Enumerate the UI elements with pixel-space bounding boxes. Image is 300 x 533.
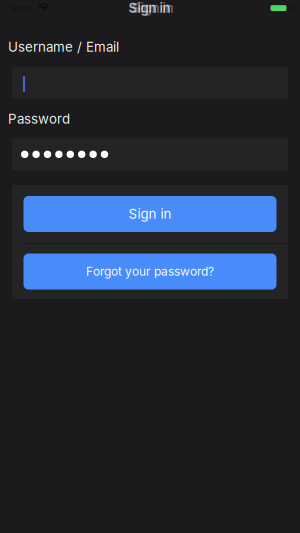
staticText: Sign in xyxy=(128,0,170,16)
staticText: Forgot your password? xyxy=(86,264,214,279)
button[interactable]: Username / Email xyxy=(12,67,288,98)
staticText: Username / Email xyxy=(8,39,119,55)
staticText: Password xyxy=(8,111,70,127)
staticText: Sign in xyxy=(131,0,173,16)
button[interactable]: Forgot your password? xyxy=(23,253,276,289)
staticText: Sign in xyxy=(128,206,171,222)
button[interactable]: Password xyxy=(12,139,288,170)
button[interactable]: Sign in xyxy=(23,196,276,232)
staticText: Carrier xyxy=(6,3,32,13)
